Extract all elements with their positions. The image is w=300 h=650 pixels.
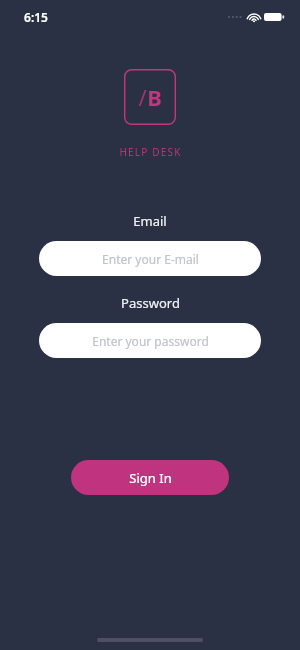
- staticText: Password: [121, 294, 180, 312]
- button[interactable]: Enter your password: [39, 323, 261, 358]
- staticText: B: [147, 82, 162, 112]
- staticText: Email: [133, 212, 167, 230]
- button[interactable]: Sign In: [71, 460, 229, 495]
- staticText: HELP DESK: [119, 145, 182, 159]
- staticText: Enter your password: [92, 333, 209, 349]
- button[interactable]: Enter your E-mail: [39, 241, 261, 276]
- staticText: /: [138, 82, 147, 112]
- staticText: Sign In: [129, 469, 172, 487]
- staticText: Enter your E-mail: [102, 251, 199, 267]
- staticText: 6:15: [24, 9, 48, 25]
